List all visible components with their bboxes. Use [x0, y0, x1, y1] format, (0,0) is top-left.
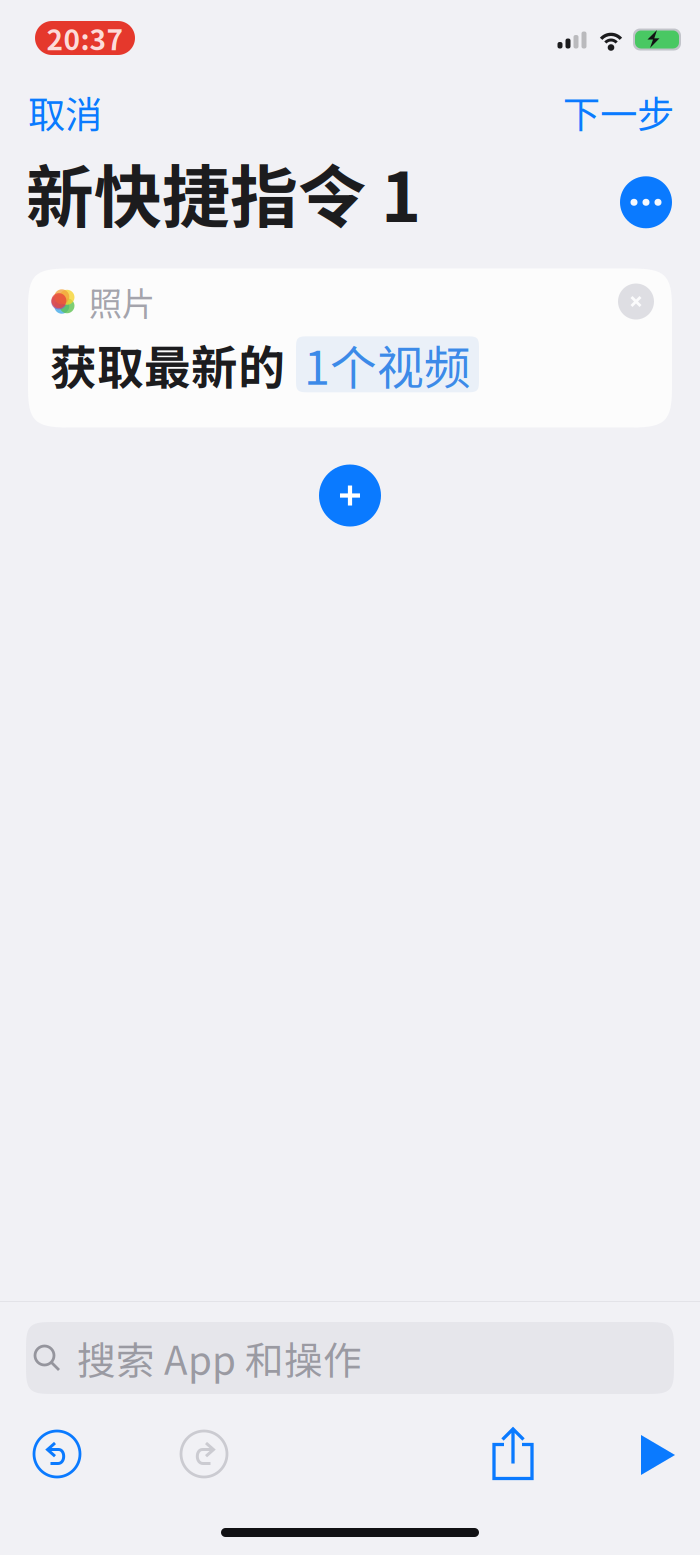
staticText: 获取最新的: [50, 330, 285, 398]
button[interactable]: More options: [620, 176, 672, 228]
staticText: 20:37: [46, 18, 123, 58]
button[interactable]: 下一步: [563, 82, 674, 142]
button[interactable]: 搜索 App 和操作: [26, 1322, 674, 1394]
staticText: 新快捷指令 1: [26, 143, 421, 242]
staticText: 取消: [28, 85, 102, 139]
staticText: 1个视频: [304, 330, 471, 398]
button[interactable]: 照片: [28, 268, 672, 427]
button[interactable]: Add action: [319, 464, 381, 526]
staticText: 搜索 App 和操作: [77, 1330, 362, 1386]
staticText: 下一步: [563, 85, 674, 139]
button[interactable]: Redo: [176, 1426, 232, 1482]
button[interactable]: Undo: [29, 1426, 85, 1482]
button[interactable]: Share: [491, 1426, 535, 1481]
button[interactable]: 取消: [28, 82, 102, 142]
button[interactable]: Remove action: [618, 283, 654, 319]
button[interactable]: Run shortcut: [639, 1433, 678, 1475]
staticText: 照片: [89, 277, 155, 326]
